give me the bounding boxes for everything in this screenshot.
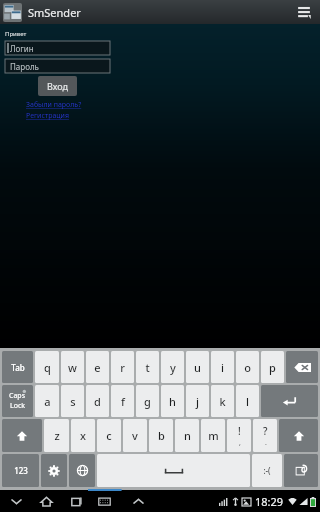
button[interactable]: Expand [128,491,148,511]
button[interactable]: v [123,419,147,452]
button[interactable]: n [175,419,199,452]
staticText: u [194,360,201,375]
button[interactable]: k [211,385,234,417]
button[interactable]: gear [41,454,67,487]
staticText: g [144,394,151,409]
staticText: m [208,428,219,443]
button[interactable]: globe [69,454,95,487]
staticText: Привет [5,30,27,38]
button[interactable]: Home [36,491,56,511]
staticText: 18:29 [255,494,284,509]
button[interactable]: q [35,351,59,383]
staticText: Логин [10,43,34,54]
staticText: p [269,360,276,375]
button[interactable]: a [35,385,59,417]
staticText: f [121,394,125,409]
button[interactable]: clip [284,454,318,487]
staticText: k [219,394,226,409]
button[interactable]: shift [279,419,318,452]
button[interactable]: z [44,419,69,452]
button[interactable]: p [261,351,284,383]
staticText: o [244,360,251,375]
staticText: a [44,394,51,409]
button[interactable]: Вход [38,76,77,96]
staticText: Вход [47,80,68,92]
button[interactable]: u [186,351,209,383]
button[interactable]: ? [253,419,277,452]
button[interactable]: x [71,419,95,452]
button[interactable]: m [201,419,225,452]
staticText: y [170,360,176,375]
button[interactable]: backspace [286,351,318,383]
button[interactable]: space [97,454,250,487]
staticText: q [44,360,51,375]
button[interactable]: h [161,385,184,417]
staticText: Забыли пароль? [26,100,82,110]
staticText: Tab [11,362,25,373]
button[interactable]: Recent apps [66,491,86,511]
staticText: i [221,360,224,375]
button[interactable]: Пароль [5,59,110,73]
staticText: r [120,360,125,375]
button[interactable]: Switch keyboard [94,491,114,511]
button[interactable]: r [111,351,134,383]
staticText: . [265,438,267,448]
staticText: Caps [9,391,26,401]
button[interactable]: t [136,351,159,383]
staticText: , [239,438,241,448]
staticText: Lock [10,401,26,411]
button[interactable]: Tab [2,351,33,383]
button[interactable]: App icon [3,3,22,22]
button[interactable]: g [136,385,159,417]
staticText: x [80,428,86,443]
staticText: b [158,428,165,443]
button[interactable]: j [186,385,209,417]
staticText: j [196,394,199,409]
button[interactable]: w [61,351,84,383]
staticText: d [94,394,101,409]
staticText: v [132,428,138,443]
button[interactable]: Логин [5,41,110,55]
staticText: t [145,360,150,375]
button[interactable]: 123 [2,454,39,487]
button[interactable]: b [149,419,173,452]
staticText: z [54,428,60,443]
staticText: l [246,394,249,409]
staticText: n [184,428,191,443]
button[interactable]: y [161,351,184,383]
staticText: w [68,360,77,375]
button[interactable]: i [211,351,234,383]
button[interactable]: Забыли пароль? [26,100,82,110]
button[interactable]: Hide keyboard [6,491,26,511]
button[interactable]: o [236,351,259,383]
staticText: SmSender [28,5,81,20]
button[interactable]: e [86,351,109,383]
button[interactable]: f [111,385,134,417]
button[interactable]: c [97,419,121,452]
button[interactable]: More options [292,0,316,24]
staticText: e [94,360,101,375]
button[interactable]: enter [261,385,318,417]
staticText: 123 [14,465,28,476]
staticText: ! [238,424,241,438]
staticText: h [169,394,176,409]
button[interactable]: l [236,385,259,417]
button[interactable]: :-( [252,454,282,487]
staticText: c [106,428,112,443]
button[interactable]: shift [2,419,42,452]
staticText: Регистрация [26,111,69,121]
staticText: ? [263,424,268,438]
button[interactable]: d [86,385,109,417]
button[interactable]: s [61,385,84,417]
staticText: :-( [263,465,271,476]
button[interactable]: Caps [2,385,33,417]
staticText: Пароль [10,61,39,72]
button[interactable]: Регистрация [26,111,69,121]
staticText: s [70,394,76,409]
button[interactable]: ! [227,419,251,452]
